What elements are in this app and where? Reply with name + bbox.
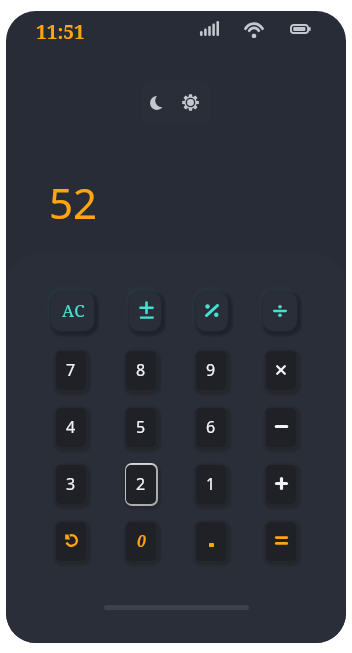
button[interactable]: Multiply <box>266 351 296 390</box>
staticText: 11:51 <box>36 19 85 45</box>
button[interactable]: 0 <box>126 522 156 561</box>
button[interactable]: Decimal point <box>196 522 226 561</box>
button[interactable]: Minus <box>266 408 296 447</box>
staticText: 3 <box>66 473 76 495</box>
button[interactable]: Undo <box>56 522 86 561</box>
button[interactable]: Clear <box>51 292 94 331</box>
staticText: 4 <box>66 416 76 438</box>
staticText: 8 <box>136 359 146 381</box>
button[interactable]: 8 <box>126 351 156 390</box>
button[interactable]: Dark mode <box>143 89 171 117</box>
button[interactable]: Plus <box>266 465 296 504</box>
button[interactable]: 4 <box>56 408 86 447</box>
button[interactable]: Divide <box>263 292 297 331</box>
staticText: 7 <box>66 359 76 381</box>
staticText: 1 <box>206 473 216 495</box>
staticText: 52 <box>49 174 98 231</box>
staticText: 6 <box>206 416 216 438</box>
staticText: 9 <box>206 359 216 381</box>
button[interactable]: Percent <box>196 292 228 331</box>
button[interactable]: 5 <box>126 408 156 447</box>
button[interactable]: Equals <box>266 522 296 561</box>
staticText: 0 <box>137 530 146 551</box>
button[interactable]: 9 <box>196 351 226 390</box>
button[interactable]: Plus minus <box>129 292 161 331</box>
staticText: AC <box>62 299 86 322</box>
button[interactable]: Settings <box>176 88 204 116</box>
staticText: 2 <box>136 473 146 495</box>
button[interactable]: 6 <box>196 408 226 447</box>
button[interactable]: 2 <box>126 465 156 504</box>
button[interactable]: 1 <box>196 465 226 504</box>
staticText: 5 <box>136 416 146 438</box>
button[interactable]: 7 <box>56 351 86 390</box>
button[interactable]: 3 <box>56 465 86 504</box>
